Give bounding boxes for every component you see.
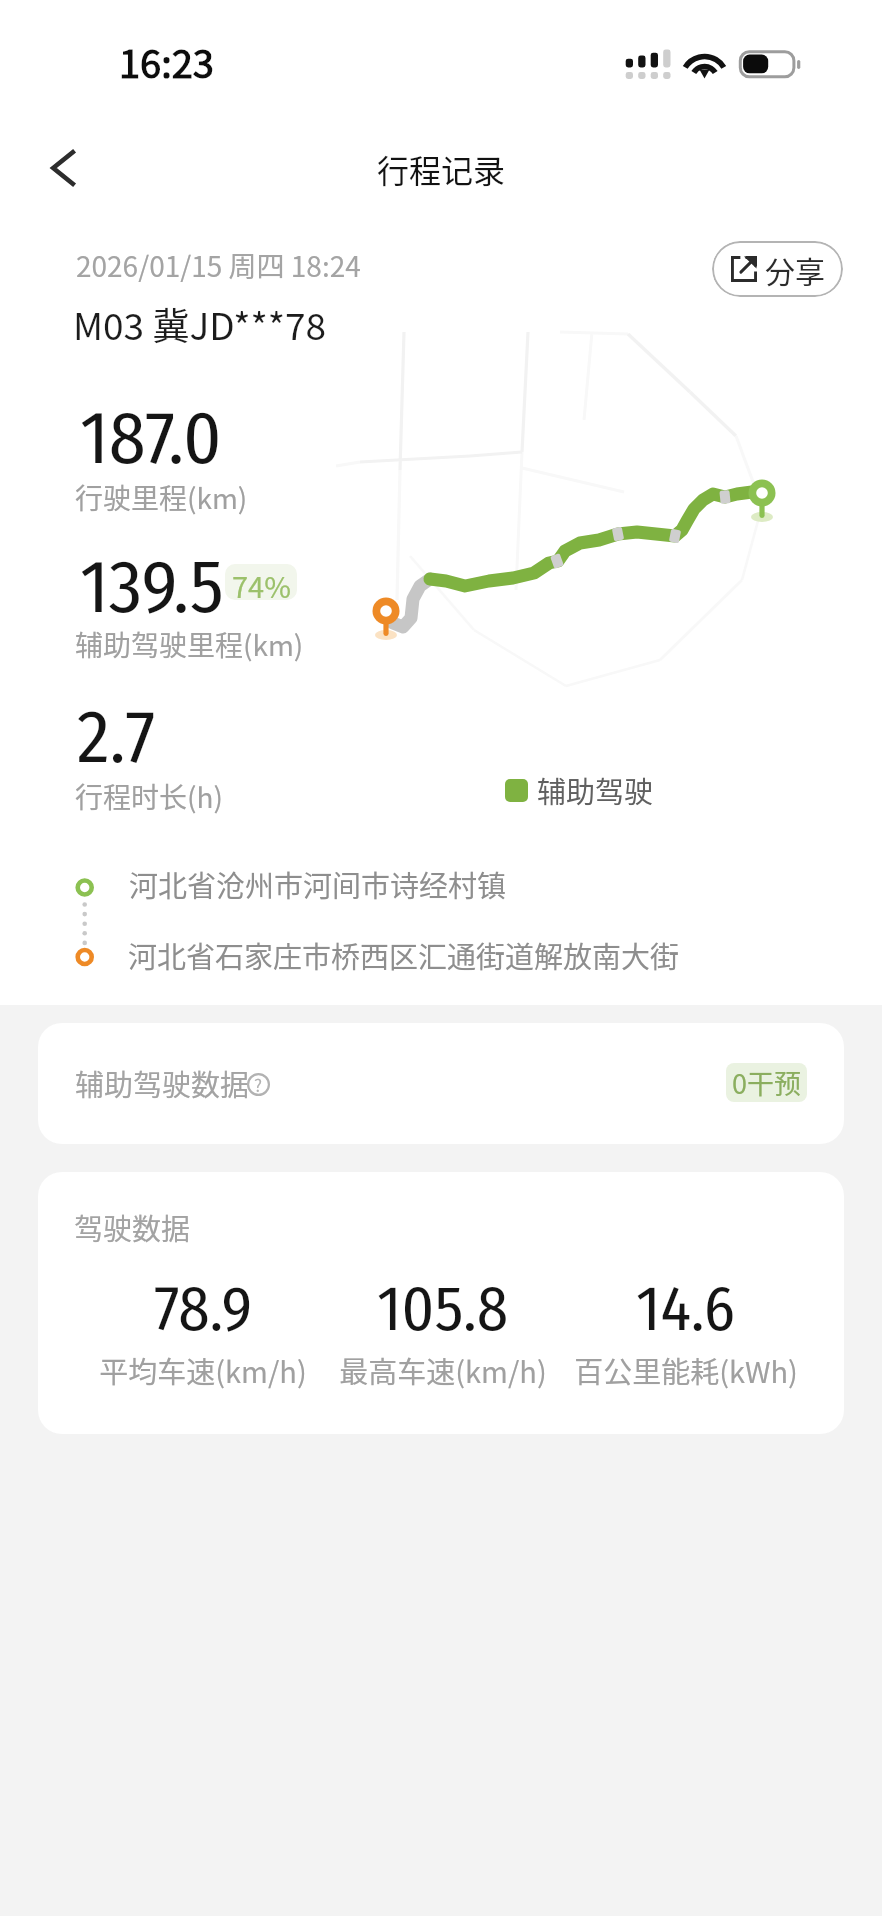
staticText: 行驶里程(km) <box>75 477 248 518</box>
staticText: 2.7 <box>77 693 156 782</box>
staticText: 行程时长(h) <box>75 776 223 817</box>
staticText: 分享 <box>765 248 825 291</box>
staticText: 平均车速(km/h) <box>53 1349 353 1391</box>
staticText: 105.8 <box>377 1271 509 1347</box>
staticText: 139.5 <box>80 543 224 632</box>
staticText: 最高车速(km/h) <box>293 1349 593 1391</box>
button[interactable]: Back <box>30 135 96 201</box>
staticText: 驾驶数据 <box>74 1206 191 1248</box>
staticText: 2026/01/15 周四 18:24 <box>76 245 361 286</box>
staticText: 0干预 <box>732 1063 801 1102</box>
staticText: 辅助驾驶里程(km) <box>75 624 304 665</box>
staticText: 16:23 <box>119 34 214 89</box>
staticText: 河北省沧州市河间市诗经村镇 <box>129 863 507 905</box>
staticText: 14.6 <box>636 1271 736 1347</box>
staticText: ? <box>254 1072 263 1095</box>
staticText: 74% <box>232 564 291 600</box>
staticText: 河北省石家庄市桥西区汇通街道解放南大街 <box>128 934 680 976</box>
staticText: 78.9 <box>154 1271 253 1347</box>
staticText: 187.0 <box>80 394 222 483</box>
staticText: 百公里能耗(kWh) <box>536 1349 836 1391</box>
staticText: 辅助驾驶数据 <box>75 1062 250 1104</box>
button[interactable]: 辅助驾驶数据 <box>38 1023 844 1144</box>
staticText: 行程记录 <box>377 146 506 192</box>
staticText: 辅助驾驶 <box>537 769 654 811</box>
staticText: M03 冀JD***78 <box>73 297 327 351</box>
button[interactable]: 分享 <box>712 241 843 297</box>
